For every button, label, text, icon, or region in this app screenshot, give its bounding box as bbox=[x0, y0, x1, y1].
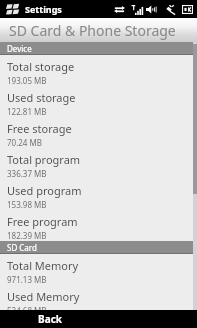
button[interactable]: Used storage bbox=[0, 86, 197, 117]
button[interactable]: Signal strength bbox=[129, 3, 142, 16]
staticText: Total storage bbox=[7, 59, 75, 74]
staticText: Used storage bbox=[7, 90, 76, 105]
staticText: SD Card bbox=[7, 242, 37, 253]
button[interactable]: Device bbox=[0, 42, 197, 55]
staticText: Used Memory bbox=[7, 289, 80, 304]
button[interactable]: Start bbox=[4, 2, 20, 16]
button[interactable]: Free storage bbox=[0, 117, 197, 148]
button[interactable]: Free program bbox=[0, 210, 197, 241]
button[interactable]: Used Memory bbox=[0, 285, 197, 310]
staticText: 524.68 MB bbox=[7, 305, 47, 310]
staticText: 336.37 MB bbox=[7, 168, 47, 179]
staticText: 153.98 MB bbox=[7, 199, 47, 210]
button[interactable]: Total program bbox=[0, 148, 197, 179]
staticText: Back bbox=[38, 312, 62, 326]
button[interactable]: Back bbox=[0, 310, 99, 328]
staticText: Free program bbox=[7, 214, 78, 229]
staticText: Device bbox=[7, 43, 32, 54]
button[interactable]: Power bbox=[164, 3, 177, 16]
staticText: 193.05 MB bbox=[7, 75, 47, 86]
staticText: Used program bbox=[7, 183, 82, 198]
staticText: 182.39 MB bbox=[7, 230, 47, 241]
staticText: 971.13 MB bbox=[7, 274, 47, 285]
staticText: SD Card & Phone Storage bbox=[9, 21, 176, 40]
button[interactable]: Total Memory bbox=[0, 254, 197, 285]
staticText: Settings bbox=[25, 3, 62, 15]
staticText: Free storage bbox=[7, 121, 72, 136]
button[interactable]: OK bbox=[181, 3, 194, 16]
staticText: 122.81 MB bbox=[7, 106, 47, 117]
button[interactable]: Used program bbox=[0, 179, 197, 210]
staticText: 70.24 MB bbox=[7, 137, 42, 148]
staticText: Total Memory bbox=[7, 258, 79, 273]
button[interactable]: Total storage bbox=[0, 55, 197, 86]
button[interactable]: SD Card bbox=[0, 241, 197, 254]
button[interactable]: Connectivity bbox=[113, 3, 126, 16]
button[interactable]: Volume bbox=[145, 3, 158, 16]
staticText: Total program bbox=[7, 152, 81, 167]
